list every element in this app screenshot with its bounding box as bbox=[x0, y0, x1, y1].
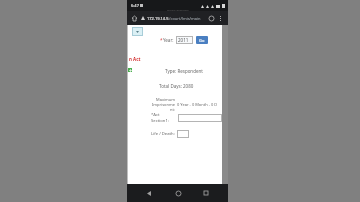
staticText: Go bbox=[199, 38, 205, 43]
staticText: 0 Year - 0 Month - 0 D bbox=[177, 102, 218, 107]
button[interactable]: Act Section 1 input bbox=[178, 114, 222, 122]
staticText: *Act Section1: bbox=[151, 112, 176, 124]
staticText: 6:47 bbox=[131, 3, 139, 8]
button[interactable]: 172.19.14.5 bbox=[147, 16, 207, 21]
button[interactable]: Menu dropdown bbox=[132, 27, 143, 36]
button[interactable]: Home bbox=[171, 186, 185, 200]
button[interactable]: Recent apps bbox=[199, 186, 213, 200]
button[interactable]: Add bbox=[128, 68, 132, 72]
staticText: Maximum Imprisonment: bbox=[151, 97, 175, 112]
button[interactable]: Home bbox=[130, 14, 139, 23]
staticText: Year: bbox=[163, 37, 174, 43]
staticText: Type: Respondent bbox=[165, 68, 203, 74]
staticText: Total Days: 2080 bbox=[159, 83, 194, 89]
button[interactable]: Tabs bbox=[207, 14, 216, 23]
button[interactable]: Back bbox=[142, 186, 156, 200]
staticText: /court/lmis/main bbox=[169, 16, 201, 21]
staticText: * bbox=[160, 37, 163, 43]
button[interactable]: More options bbox=[216, 14, 225, 23]
button[interactable]: n Act bbox=[129, 56, 141, 62]
staticText: Life / Death: bbox=[151, 131, 175, 137]
staticText: Secure connection bbox=[167, 8, 189, 11]
button[interactable]: Life or Death input bbox=[177, 130, 189, 138]
button[interactable]: 2011 bbox=[176, 36, 193, 44]
staticText: 2011 bbox=[178, 37, 189, 43]
button[interactable]: Go bbox=[196, 36, 208, 44]
staticText: 172.19.14.5 bbox=[147, 16, 169, 21]
